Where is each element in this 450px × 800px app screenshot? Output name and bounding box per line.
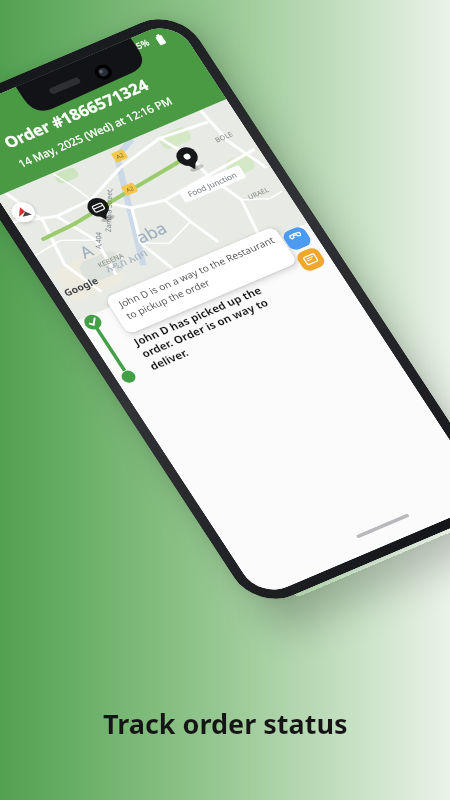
staticText: Track order status <box>103 705 348 742</box>
button[interactable] <box>3 194 43 231</box>
staticText: አዲስ አበባ <box>99 236 153 285</box>
button[interactable] <box>276 220 318 257</box>
staticText: URAEL <box>244 180 273 207</box>
staticText: A <box>71 237 102 266</box>
staticText: Order #1866571324 <box>0 41 157 186</box>
staticText: A2 <box>123 183 138 196</box>
staticText: 45% <box>126 32 154 57</box>
staticText: Zambia Street, <box>73 177 146 243</box>
staticText: BOLE <box>211 126 237 149</box>
staticText: John D is on a way to the Restaurant to … <box>111 197 290 358</box>
staticText: A,404 <box>81 223 117 257</box>
staticText: aba <box>127 210 176 254</box>
staticText: KEBENA <box>94 245 128 276</box>
staticText: Food Junction <box>183 158 241 210</box>
staticText: A2 <box>113 149 128 163</box>
staticText: Google <box>58 265 104 307</box>
button[interactable]: John D is on a way to the Restaurant to … <box>96 186 306 374</box>
button[interactable] <box>290 241 331 278</box>
staticText: John D has picked up the order. Order is… <box>122 253 289 403</box>
staticText: 14 May, 2025 (Wed) at 12:16 PM <box>12 58 178 206</box>
